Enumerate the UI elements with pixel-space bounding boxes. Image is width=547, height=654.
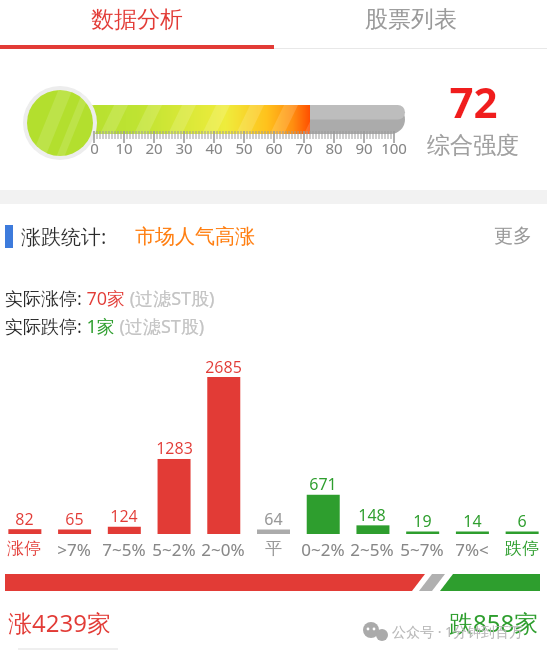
staticText: 30 (175, 138, 193, 158)
staticText: 40 (205, 138, 223, 158)
staticText: 14 (463, 510, 482, 532)
staticText: 65 (65, 508, 84, 530)
staticText: 6 (517, 510, 527, 532)
staticText: 2~5% (350, 538, 394, 561)
staticText: 公众号 · 1分钟到百万 (392, 622, 524, 641)
staticText: 平 (265, 538, 282, 559)
staticText: 80 (325, 138, 343, 158)
staticText: 70 (295, 138, 313, 158)
staticText: 1283 (156, 437, 193, 459)
staticText: >7% (57, 538, 91, 561)
staticText: 0~2% (301, 538, 345, 561)
staticText: 90 (355, 138, 373, 158)
staticText: 跌858家 (449, 606, 539, 639)
staticText: 19 (413, 510, 432, 532)
staticText: 50 (235, 138, 253, 158)
staticText: 10 (115, 138, 133, 158)
staticText: 跌停 (505, 538, 539, 559)
staticText: 涨4239家 (8, 606, 111, 639)
staticText: 综合强度 (427, 131, 519, 160)
button[interactable]: 更多 (494, 224, 532, 248)
button[interactable]: 数据分析 (0, 0, 274, 38)
staticText: 实际跌停: 1家 (过滤ST股) (5, 314, 205, 339)
staticText: 市场人气高涨 (135, 224, 255, 249)
staticText: 671 (309, 473, 337, 495)
staticText: 涨跌统计: (21, 223, 107, 250)
staticText: 64 (264, 508, 283, 530)
button[interactable]: 股票列表 (274, 0, 547, 38)
staticText: 72 (449, 73, 498, 130)
staticText: 0 (90, 138, 99, 158)
staticText: 5~7% (400, 538, 444, 561)
staticText: 实际涨停: 70家 (过滤ST股) (5, 286, 215, 311)
staticText: 82 (15, 508, 34, 530)
staticText: 7~5% (102, 538, 146, 561)
staticText: 20 (145, 138, 163, 158)
staticText: 股票列表 (365, 5, 457, 34)
staticText: 7%< (455, 538, 489, 561)
staticText: 100 (381, 138, 407, 158)
staticText: 148 (358, 504, 386, 526)
staticText: 5~2% (152, 538, 196, 561)
staticText: 2~0% (201, 538, 245, 561)
staticText: 2685 (205, 356, 242, 378)
staticText: 60 (265, 138, 283, 158)
staticText: 涨停 (7, 538, 41, 559)
staticText: 124 (110, 505, 138, 527)
button[interactable]: 涨跌统计: (0, 218, 547, 254)
staticText: 数据分析 (91, 5, 183, 34)
